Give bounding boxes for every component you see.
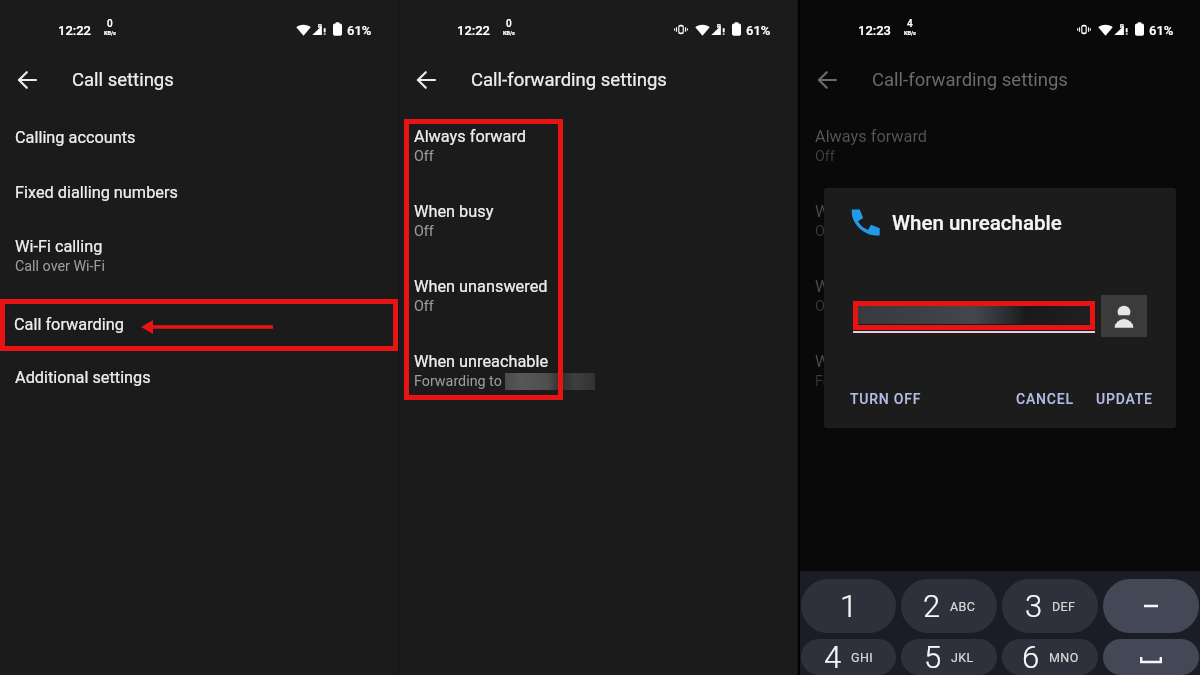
- button[interactable]: Calling accounts: [0, 115, 398, 159]
- staticText: DEF: [1052, 599, 1076, 614]
- staticText: KB/s: [904, 30, 916, 36]
- button[interactable]: 3: [1002, 579, 1098, 633]
- staticText: Forwarding to: [815, 373, 903, 390]
- staticText: When unreachable: [892, 211, 1062, 235]
- staticText: R: [717, 22, 721, 29]
- button[interactable]: Choose contact: [1101, 295, 1147, 337]
- staticText: 0: [506, 18, 512, 30]
- button[interactable]: When unreachable: [399, 339, 797, 395]
- button[interactable]: 1: [801, 579, 896, 633]
- staticText: Off: [815, 223, 835, 240]
- button[interactable]: 6: [1002, 639, 1098, 675]
- staticText: 4: [824, 639, 842, 675]
- button[interactable]: TURN OFF: [850, 391, 922, 407]
- button[interactable]: 5: [901, 639, 997, 675]
- staticText: Forwarding to: [414, 373, 502, 390]
- staticText: Always forward: [414, 127, 527, 146]
- button[interactable]: 2: [901, 579, 997, 633]
- staticText: When unreachable: [414, 352, 549, 371]
- button[interactable]: Wi-Fi calling: [0, 226, 398, 281]
- button[interactable]: When unanswered: [800, 264, 1200, 320]
- staticText: Call settings: [72, 69, 174, 91]
- staticText: Call-forwarding settings: [872, 69, 1068, 91]
- staticText: 4: [907, 18, 913, 30]
- button[interactable]: Back: [405, 60, 445, 100]
- staticText: 1: [840, 588, 858, 624]
- staticText: 12:22: [58, 23, 92, 38]
- staticText: Off: [815, 298, 835, 315]
- button[interactable]: Fixed dialling numbers: [0, 170, 398, 214]
- staticText: Fixed dialling numbers: [15, 183, 178, 202]
- staticText: Always forward: [815, 127, 928, 146]
- staticText: When busy: [414, 202, 494, 221]
- button[interactable]: Back: [806, 60, 846, 100]
- staticText: UPDATE: [1096, 391, 1153, 407]
- button[interactable]: Always forward: [800, 114, 1200, 170]
- button[interactable]: Call forwarding: [0, 299, 398, 351]
- button[interactable]: When unanswered: [399, 264, 797, 320]
- staticText: KB/s: [104, 30, 116, 36]
- staticText: 0: [107, 18, 113, 30]
- staticText: Call forwarding: [14, 315, 124, 334]
- button[interactable]: Always forward: [399, 114, 797, 170]
- staticText: 6: [1022, 639, 1040, 675]
- button[interactable]: Back: [6, 60, 46, 100]
- staticText: When unreachable: [815, 352, 950, 371]
- staticText: 12:23: [858, 23, 892, 38]
- staticText: Off: [815, 148, 835, 165]
- button[interactable]: Space: [1103, 639, 1199, 675]
- staticText: Calling accounts: [15, 128, 136, 147]
- staticText: 61%: [746, 23, 771, 38]
- staticText: 61%: [347, 23, 372, 38]
- staticText: Call-forwarding settings: [471, 69, 667, 91]
- staticText: Off: [414, 148, 434, 165]
- button[interactable]: When unreachable: [800, 339, 1200, 395]
- button[interactable]: Dash: [1103, 579, 1199, 633]
- staticText: 2: [923, 588, 941, 624]
- staticText: When busy: [815, 202, 895, 221]
- staticText: 12:22: [457, 23, 491, 38]
- staticText: When unanswered: [414, 277, 548, 296]
- button[interactable]: CANCEL: [1016, 391, 1074, 407]
- staticText: CANCEL: [1016, 391, 1074, 407]
- staticText: R: [318, 22, 322, 29]
- staticText: Additional settings: [15, 368, 151, 387]
- staticText: Call over Wi-Fi: [15, 258, 105, 275]
- staticText: GHI: [851, 650, 874, 665]
- staticText: KB/s: [503, 30, 515, 36]
- staticText: 3: [1025, 588, 1043, 624]
- staticText: 5: [924, 639, 942, 675]
- staticText: When unanswered: [815, 277, 949, 296]
- staticText: MNO: [1049, 650, 1079, 665]
- staticText: Off: [414, 298, 434, 315]
- staticText: Off: [414, 223, 434, 240]
- staticText: Wi-Fi calling: [15, 237, 103, 256]
- button[interactable]: UPDATE: [1096, 391, 1153, 407]
- button[interactable]: When busy: [399, 189, 797, 245]
- staticText: R: [1120, 22, 1124, 29]
- button[interactable]: 4: [801, 639, 896, 675]
- button[interactable]: Additional settings: [0, 355, 398, 399]
- staticText: TURN OFF: [850, 391, 922, 407]
- button[interactable]: When busy: [800, 189, 1200, 245]
- staticText: JKL: [951, 650, 974, 665]
- staticText: 61%: [1149, 23, 1174, 38]
- staticText: ABC: [950, 599, 976, 614]
